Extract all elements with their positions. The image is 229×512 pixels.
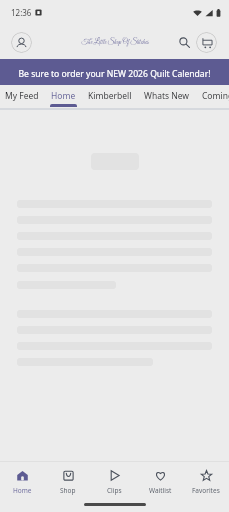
staticText: Waitlist (149, 486, 172, 495)
button[interactable]: Home (45, 85, 82, 110)
button[interactable]: Shopping cart (196, 32, 217, 53)
staticText: The Little Shop Of Stitches (81, 38, 149, 47)
button[interactable]: Account (11, 32, 32, 53)
button[interactable]: Waitlist (137, 462, 183, 497)
button[interactable]: My Feed (0, 85, 45, 110)
staticText: 12:36 (11, 7, 32, 18)
button[interactable]: Home (0, 462, 45, 497)
button[interactable]: Whats New (138, 85, 196, 110)
button[interactable]: Be sure to order your NEW 2026 Quilt Cal… (0, 59, 229, 85)
staticText: Favorites (192, 486, 220, 495)
staticText: Shop (60, 486, 76, 495)
button[interactable]: Favorites (183, 462, 229, 497)
button[interactable]: Kimberbell (82, 85, 138, 110)
staticText: My Feed (5, 90, 39, 102)
staticText: Home (13, 486, 32, 495)
staticText: Kimberbell (88, 90, 132, 102)
staticText: Home (51, 90, 76, 102)
button[interactable]: Shop (45, 462, 91, 497)
staticText: Clips (107, 486, 122, 495)
button[interactable]: Clips (91, 462, 137, 497)
staticText: Be sure to order your NEW 2026 Quilt Cal… (18, 68, 211, 80)
staticText: Coming Soon (202, 90, 229, 102)
staticText: Whats New (144, 90, 190, 102)
button[interactable]: Search (175, 33, 193, 51)
button[interactable]: Coming Soon (196, 85, 229, 110)
